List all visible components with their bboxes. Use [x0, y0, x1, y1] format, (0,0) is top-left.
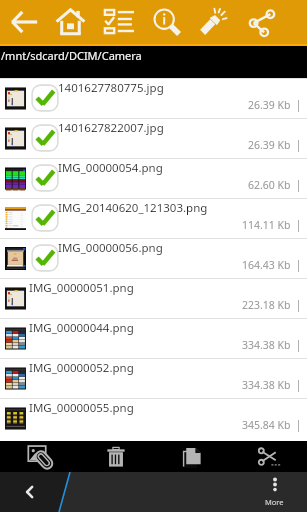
- staticText: 1401627780775.jpg: [58, 80, 164, 96]
- staticText: 164.43 Kb: [242, 258, 291, 272]
- button[interactable]: 1401627822007.jpg: [0, 118, 307, 158]
- button[interactable]: Back: [0, 0, 47, 44]
- staticText: IMG_00000055.png: [29, 400, 134, 416]
- button[interactable]: More options: [255, 472, 293, 512]
- button[interactable]: IMG_00000055.png: [0, 398, 307, 438]
- button[interactable]: Back: [0, 472, 60, 512]
- button[interactable]: Info: [143, 0, 190, 44]
- button[interactable]: Delete: [80, 441, 152, 472]
- staticText: IMG_20140620_121303.png: [58, 200, 208, 216]
- button[interactable]: IMG_00000056.png: [0, 238, 307, 278]
- button[interactable]: IMG_00000051.png: [0, 278, 307, 318]
- staticText: 223.18 Kb: [242, 298, 291, 312]
- button[interactable]: IMG_20140620_121303.png: [0, 198, 307, 238]
- button[interactable]: IMG_00000052.png: [0, 358, 307, 398]
- staticText: 1401627822007.jpg: [58, 120, 164, 136]
- button[interactable]: Home: [47, 0, 94, 44]
- button[interactable]: 1401627780775.jpg: [0, 78, 307, 118]
- staticText: IMG_00000052.png: [29, 360, 134, 376]
- staticText: 334.38 Kb: [242, 378, 291, 392]
- staticText: 26.39 Kb: [248, 138, 291, 152]
- staticText: IMG_00000051.png: [29, 280, 134, 296]
- staticText: 62.60 Kb: [248, 178, 291, 192]
- staticText: 334.38 Kb: [242, 338, 291, 352]
- button[interactable]: Attach image: [4, 441, 76, 472]
- button[interactable]: Select all: [95, 0, 142, 44]
- button[interactable]: IMG_00000054.png: [0, 158, 307, 198]
- staticText: 114.11 Kb: [242, 218, 291, 232]
- button[interactable]: IMG_00000044.png: [0, 318, 307, 358]
- button[interactable]: Copy: [156, 441, 228, 472]
- staticText: IMG_00000044.png: [29, 320, 134, 336]
- staticText: 26.39 Kb: [248, 98, 291, 112]
- button[interactable]: Flashlight: [189, 0, 236, 44]
- staticText: 345.84 Kb: [242, 418, 291, 432]
- staticText: More: [265, 497, 284, 507]
- button[interactable]: Share: [238, 0, 285, 44]
- button[interactable]: Cut: [233, 441, 305, 472]
- staticText: IMG_00000056.png: [58, 240, 163, 256]
- staticText: IMG_00000054.png: [58, 160, 163, 176]
- staticText: /mnt/sdcard/DCIM/Camera: [1, 48, 142, 63]
